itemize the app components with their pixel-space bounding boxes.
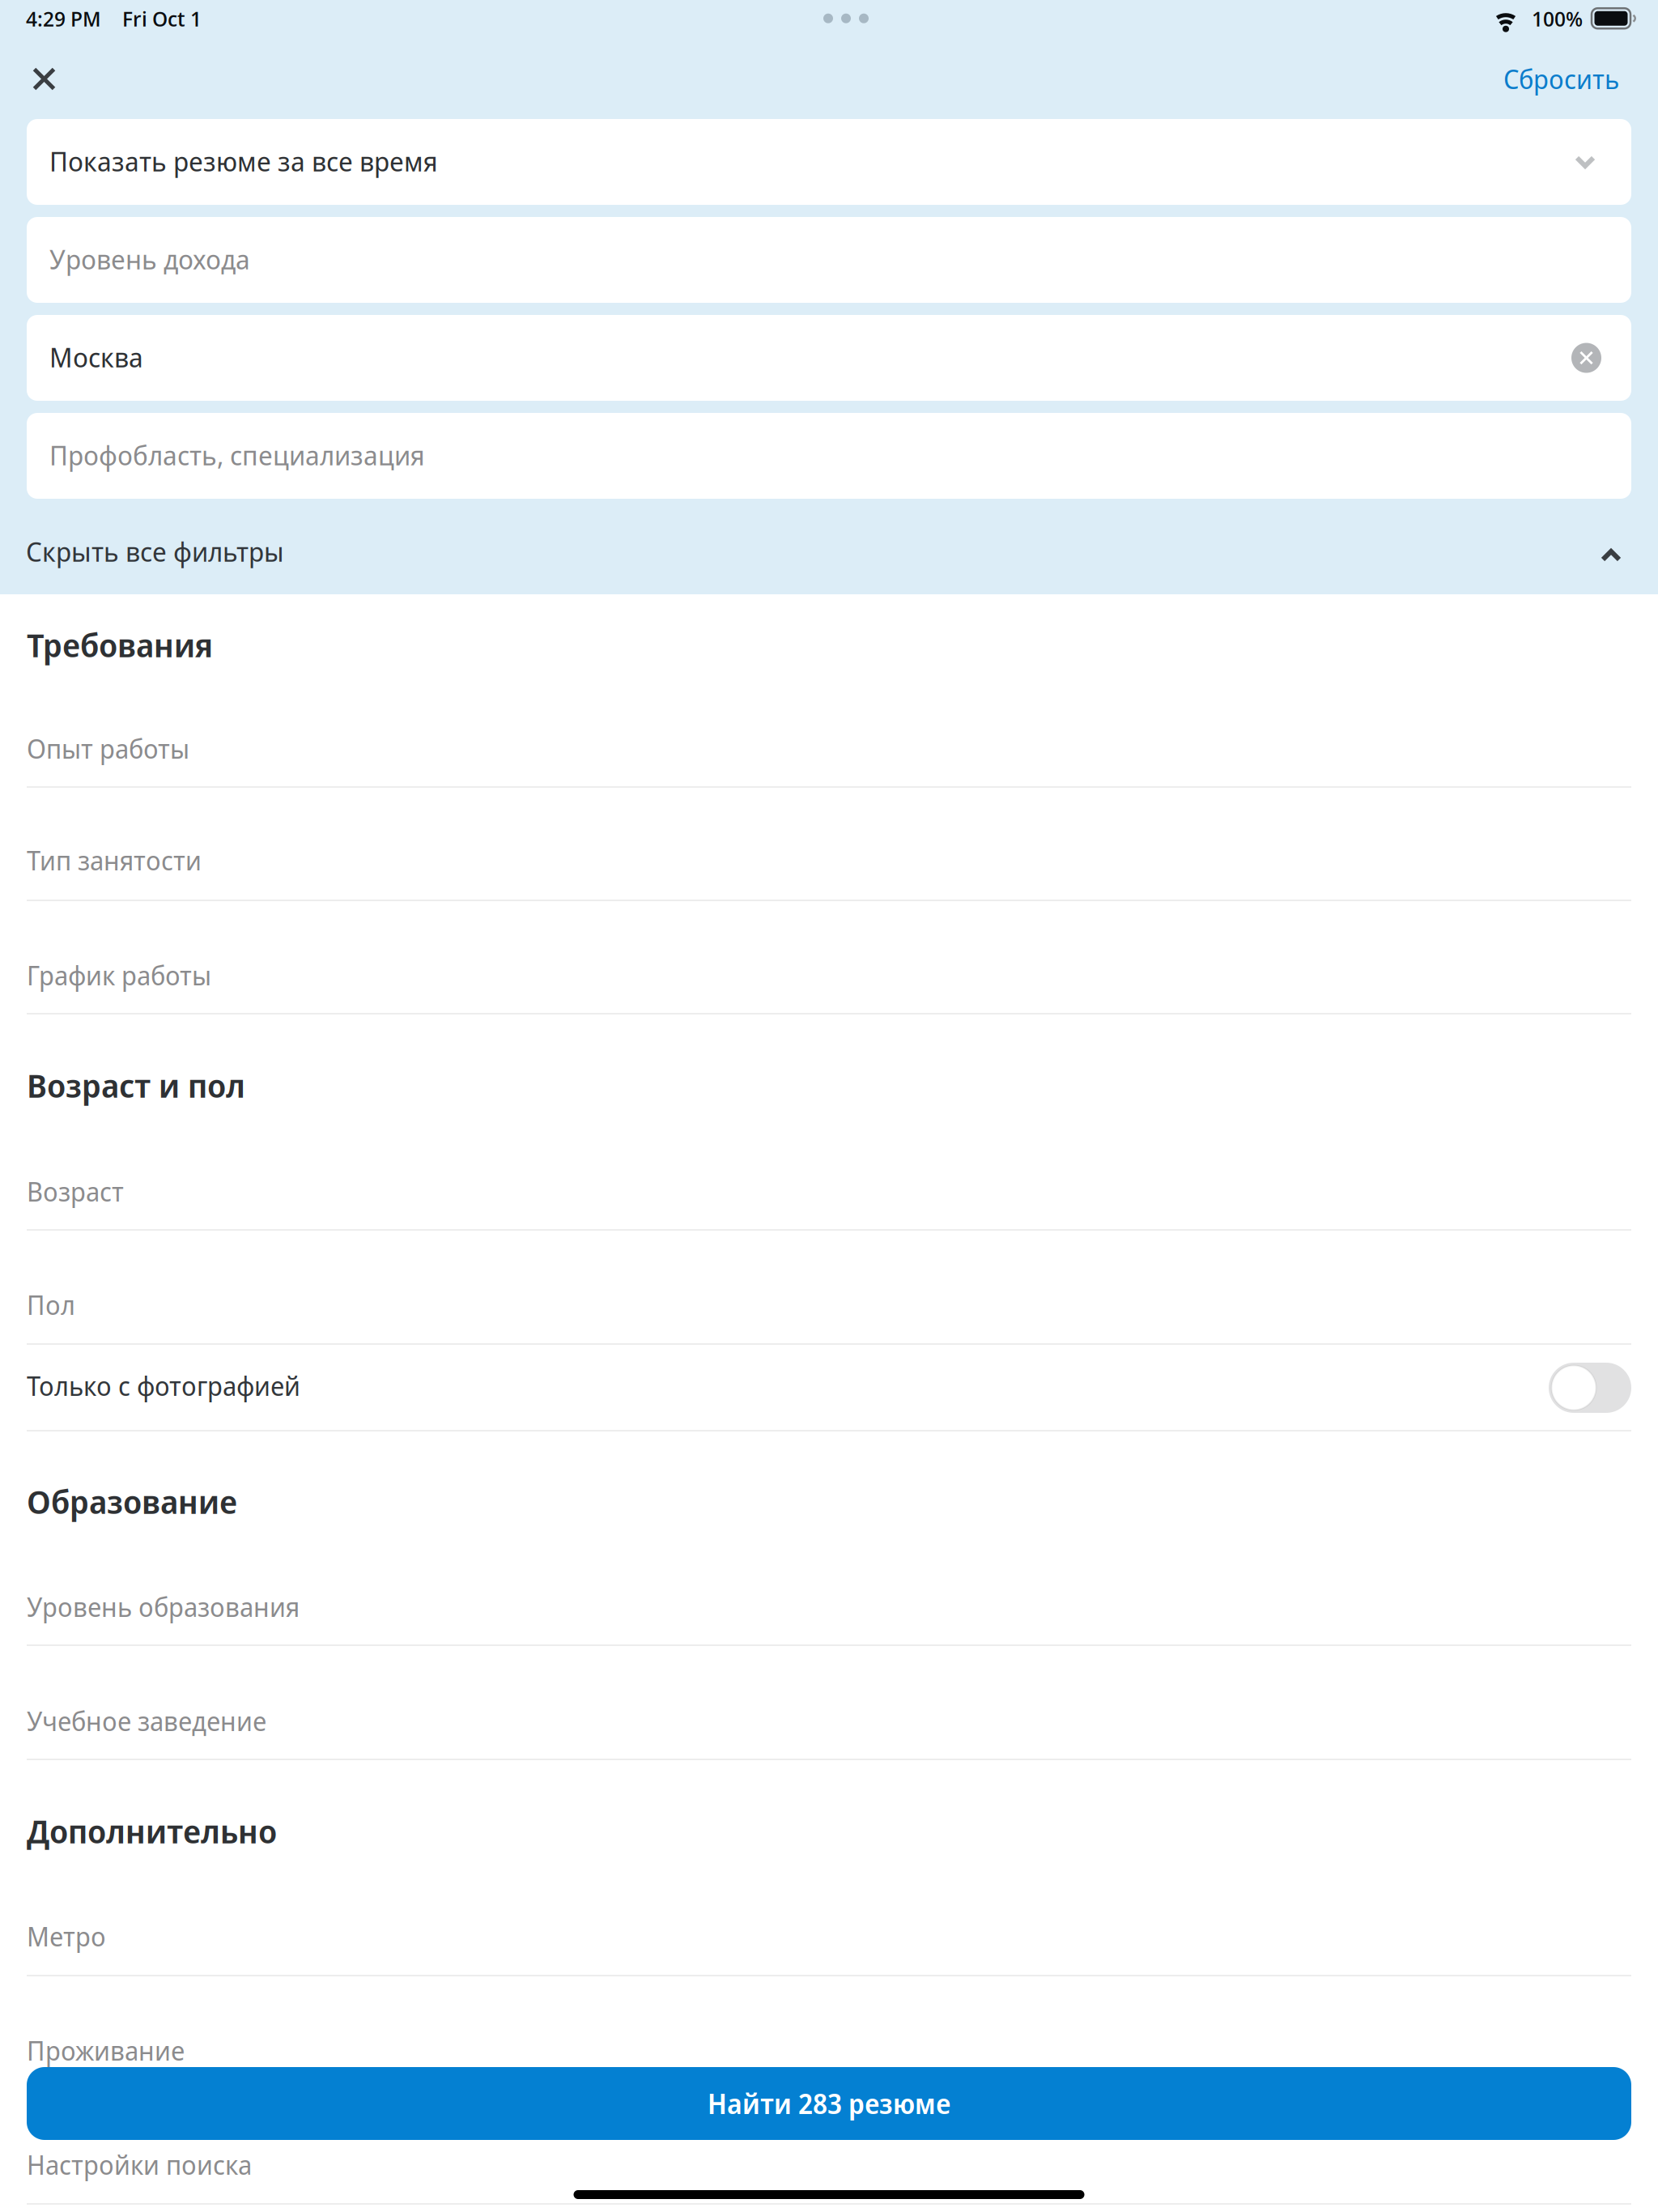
staticText: Сбросить bbox=[1503, 61, 1619, 97]
staticText: Fri Oct 1 bbox=[122, 4, 202, 33]
staticText: Метро bbox=[27, 1918, 106, 1954]
staticText: Тип занятости bbox=[27, 842, 202, 878]
button[interactable]: Учебное заведение bbox=[0, 1646, 1658, 1760]
staticText: Скрыть все фильтры bbox=[26, 533, 284, 570]
staticText: Уровень образования bbox=[27, 1589, 300, 1625]
button[interactable]: Пол bbox=[0, 1231, 1658, 1345]
button[interactable]: Профобласть, специализация bbox=[27, 413, 1631, 499]
button[interactable]: Найти 283 резюме bbox=[27, 2067, 1631, 2140]
staticText: Пол bbox=[27, 1287, 75, 1323]
staticText: Профобласть, специализация bbox=[49, 436, 425, 473]
button[interactable]: Закрыть bbox=[16, 51, 72, 107]
button[interactable]: Проживание bbox=[0, 1976, 1658, 2091]
staticText: Москва bbox=[49, 338, 143, 375]
button[interactable]: Тип занятости bbox=[0, 788, 1658, 901]
staticText: Возраст и пол bbox=[27, 1063, 245, 1107]
button[interactable]: Опыт работы bbox=[0, 674, 1658, 788]
staticText: Настройки поиска bbox=[27, 2146, 252, 2182]
button[interactable]: График работы bbox=[0, 901, 1658, 1015]
button[interactable]: Метро bbox=[0, 1863, 1658, 1976]
staticText: График работы bbox=[27, 957, 211, 993]
staticText: Требования bbox=[27, 623, 213, 667]
button[interactable]: Уровень образования bbox=[0, 1533, 1658, 1646]
button[interactable]: Скрыть все фильтры bbox=[0, 499, 1658, 594]
staticText: Опыт работы bbox=[27, 730, 189, 766]
staticText: 4:29 PM bbox=[26, 4, 101, 33]
button[interactable]: Только с фотографией bbox=[0, 1345, 1658, 1431]
button[interactable]: Уровень дохода bbox=[27, 217, 1631, 303]
staticText: Проживание bbox=[27, 2032, 185, 2068]
staticText: 100% bbox=[1532, 4, 1583, 33]
staticText: Уровень дохода bbox=[49, 240, 250, 277]
staticText: Возраст bbox=[27, 1173, 124, 1209]
button[interactable]: Показать резюме за все время bbox=[27, 119, 1631, 205]
staticText: Дополнительно bbox=[27, 1809, 277, 1853]
staticText: Учебное заведение bbox=[27, 1703, 266, 1739]
staticText: Образование bbox=[27, 1479, 237, 1523]
button[interactable]: Сбросить bbox=[1494, 45, 1629, 113]
button[interactable]: Москва bbox=[27, 315, 1631, 401]
button[interactable]: Возраст bbox=[0, 1117, 1658, 1231]
staticText: Показать резюме за все время bbox=[49, 143, 438, 179]
staticText: Найти 283 резюме bbox=[708, 2085, 950, 2122]
button[interactable]: Настройки поиска bbox=[0, 2091, 1658, 2205]
staticText: Только с фотографией bbox=[27, 1368, 300, 1404]
